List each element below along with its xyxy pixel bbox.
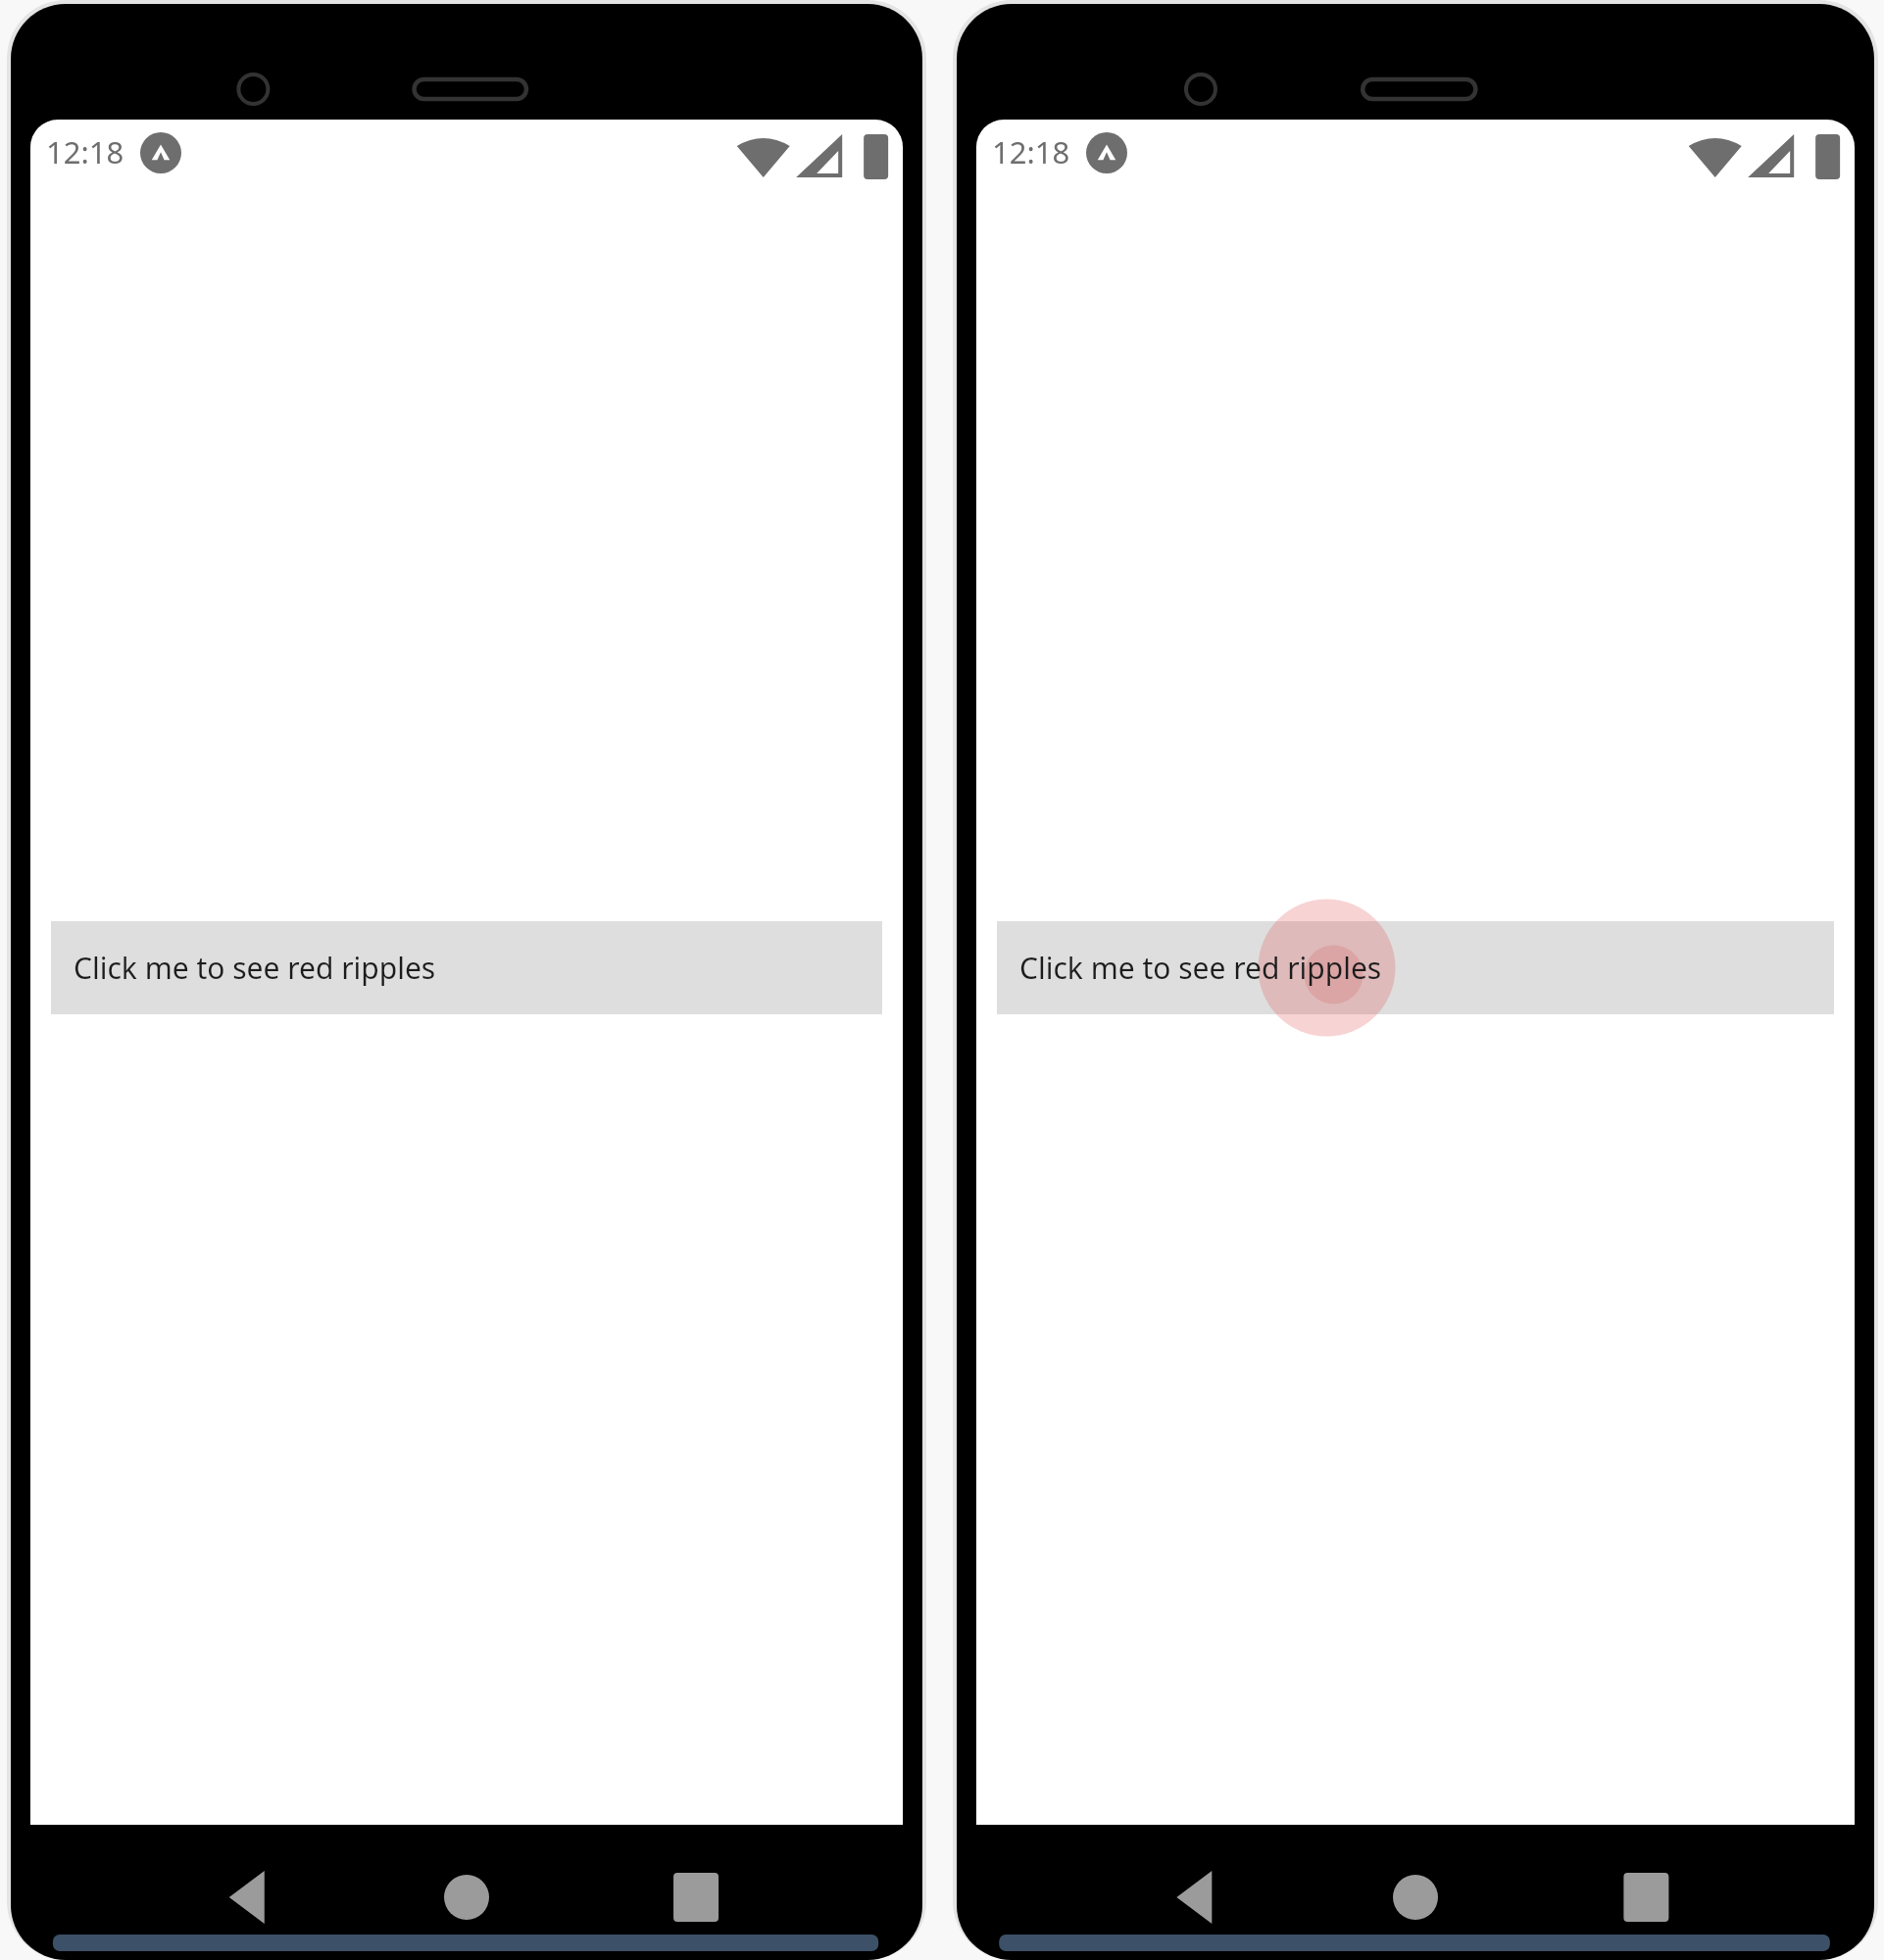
staticText: Click me to see red ripples: [74, 948, 436, 988]
button[interactable]: Back: [208, 1850, 278, 1921]
button[interactable]: Recent apps: [674, 1850, 745, 1921]
button[interactable]: Click me to see red ripples: [51, 921, 882, 1014]
staticText: 12:18: [46, 131, 124, 172]
button[interactable]: Click me to see red ripples: [997, 921, 1834, 1014]
button[interactable]: Back: [1154, 1850, 1224, 1921]
button[interactable]: Recent apps: [1626, 1850, 1697, 1921]
staticText: Click me to see red ripples: [1019, 948, 1382, 988]
staticText: 12:18: [992, 131, 1070, 172]
button[interactable]: Home: [431, 1850, 502, 1921]
button[interactable]: Home: [1380, 1850, 1451, 1921]
